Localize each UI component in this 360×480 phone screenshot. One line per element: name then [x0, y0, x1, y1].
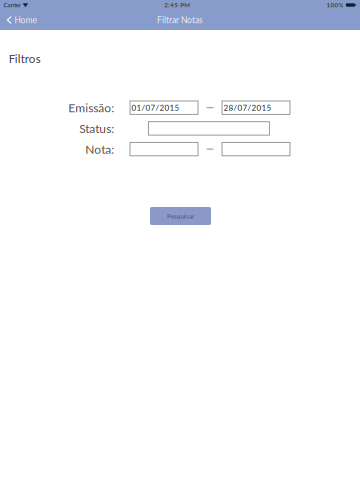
staticText: Filtros	[9, 52, 41, 65]
staticText: Status:	[79, 121, 114, 136]
staticText: 28/07/2015	[223, 103, 271, 112]
staticText: Pesquisar	[167, 212, 194, 220]
staticText: Carrier	[3, 1, 20, 9]
staticText: 01/07/2015	[131, 103, 179, 112]
button[interactable]: Home	[0, 10, 43, 30]
staticText: 2:45 PM	[164, 1, 190, 9]
staticText: Emissão:	[68, 100, 114, 115]
staticText: 100%	[326, 1, 343, 9]
staticText: Filtrar Notas	[157, 15, 203, 25]
staticText: Nota:	[85, 142, 114, 156]
button[interactable]: Pesquisar	[150, 207, 211, 225]
staticText: Home	[14, 15, 37, 25]
